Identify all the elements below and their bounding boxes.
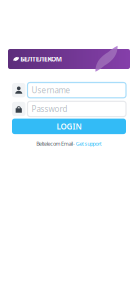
staticText: Get support <box>76 140 102 147</box>
button[interactable]: LOGIN <box>12 119 126 134</box>
staticText: Beltelecom Email · <box>36 140 74 147</box>
button[interactable]: Password <box>12 101 126 117</box>
staticText: Username <box>31 85 70 95</box>
staticText: LOGIN <box>56 121 81 132</box>
button[interactable]: Get support <box>76 140 102 147</box>
staticText: БЕЛТЕЛЕКОМ <box>20 55 62 63</box>
staticText: Password <box>31 104 67 114</box>
button[interactable]: Username <box>12 82 126 98</box>
